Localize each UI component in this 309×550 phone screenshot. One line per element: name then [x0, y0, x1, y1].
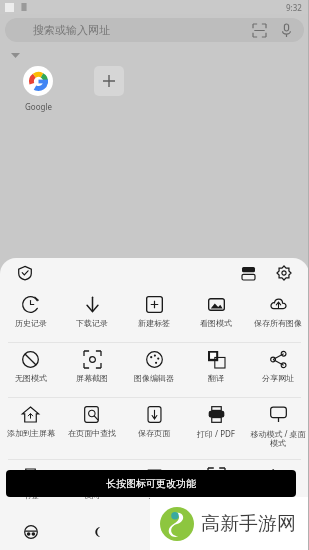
staticText: 看图模式	[200, 318, 232, 328]
staticText: 移动模式 / 桌面模式	[248, 428, 308, 449]
staticText: 屏幕截图	[76, 373, 108, 383]
staticText: 9:32	[286, 2, 302, 13]
button[interactable]: 下载记录	[61, 288, 123, 342]
staticText: 新建标签	[138, 318, 170, 328]
staticText: 历史记录	[15, 318, 47, 328]
button[interactable]: 新建标签	[123, 288, 185, 342]
button[interactable]: 安全	[14, 262, 36, 284]
staticText: Google	[25, 101, 52, 112]
button[interactable]: 扫码	[251, 22, 267, 38]
button[interactable]: 屏幕截图	[61, 343, 123, 397]
staticText: 分享网址	[262, 373, 294, 383]
button[interactable]: 书签	[0, 460, 61, 514]
staticText: 打印 / PDF	[197, 428, 235, 439]
staticText: 保存所有图像	[254, 318, 302, 328]
button[interactable]: 无痕模式	[18, 519, 44, 545]
staticText: 全屏	[208, 490, 224, 500]
button[interactable]: 分享网址	[247, 343, 309, 397]
button[interactable]: 保存页面	[123, 398, 185, 459]
button[interactable]: 历史记录	[0, 288, 61, 342]
button[interactable]: 在页面中查找	[61, 398, 123, 459]
button[interactable]: 移动模式 / 桌面模式	[247, 398, 309, 459]
button[interactable]: 夜间	[61, 460, 123, 514]
button[interactable]: 语音搜索	[278, 22, 294, 38]
button[interactable]: 字体	[123, 460, 185, 514]
button[interactable]: 清理	[247, 460, 309, 514]
staticText: 无图模式	[15, 373, 47, 383]
button[interactable]: 布局	[237, 262, 259, 284]
button[interactable]: Google	[16, 66, 60, 112]
staticText: 在页面中查找	[68, 428, 116, 438]
staticText: 清理	[270, 490, 286, 500]
button[interactable]: 看图模式	[185, 288, 247, 342]
staticText: 字体	[146, 490, 162, 500]
staticText: 添加到主屏幕	[7, 428, 55, 438]
staticText: 高新手游网	[201, 512, 296, 536]
staticText: 保存页面	[138, 428, 170, 438]
button[interactable]: 保存所有图像	[247, 288, 309, 342]
staticText: 书签	[23, 490, 39, 500]
button[interactable]: 添加快捷方式	[94, 66, 124, 96]
button[interactable]: 搜索或输入网址	[5, 18, 304, 42]
staticText: 翻译	[208, 373, 224, 383]
button[interactable]: 设置	[273, 262, 295, 284]
staticText: 下载记录	[76, 318, 108, 328]
staticText: 长按图标可更改功能	[106, 477, 196, 490]
button[interactable]: 全屏	[185, 460, 247, 514]
staticText: 图像编辑器	[134, 373, 174, 383]
button[interactable]: 添加到主屏幕	[0, 398, 61, 459]
staticText: 搜索或输入网址	[33, 23, 110, 37]
button[interactable]: 无图模式	[0, 343, 61, 397]
button[interactable]: 图像编辑器	[123, 343, 185, 397]
staticText: 夜间	[84, 490, 100, 500]
button[interactable]: 打印 / PDF	[185, 398, 247, 459]
button[interactable]: 夜间模式	[84, 519, 110, 545]
button[interactable]: 翻译	[185, 343, 247, 397]
